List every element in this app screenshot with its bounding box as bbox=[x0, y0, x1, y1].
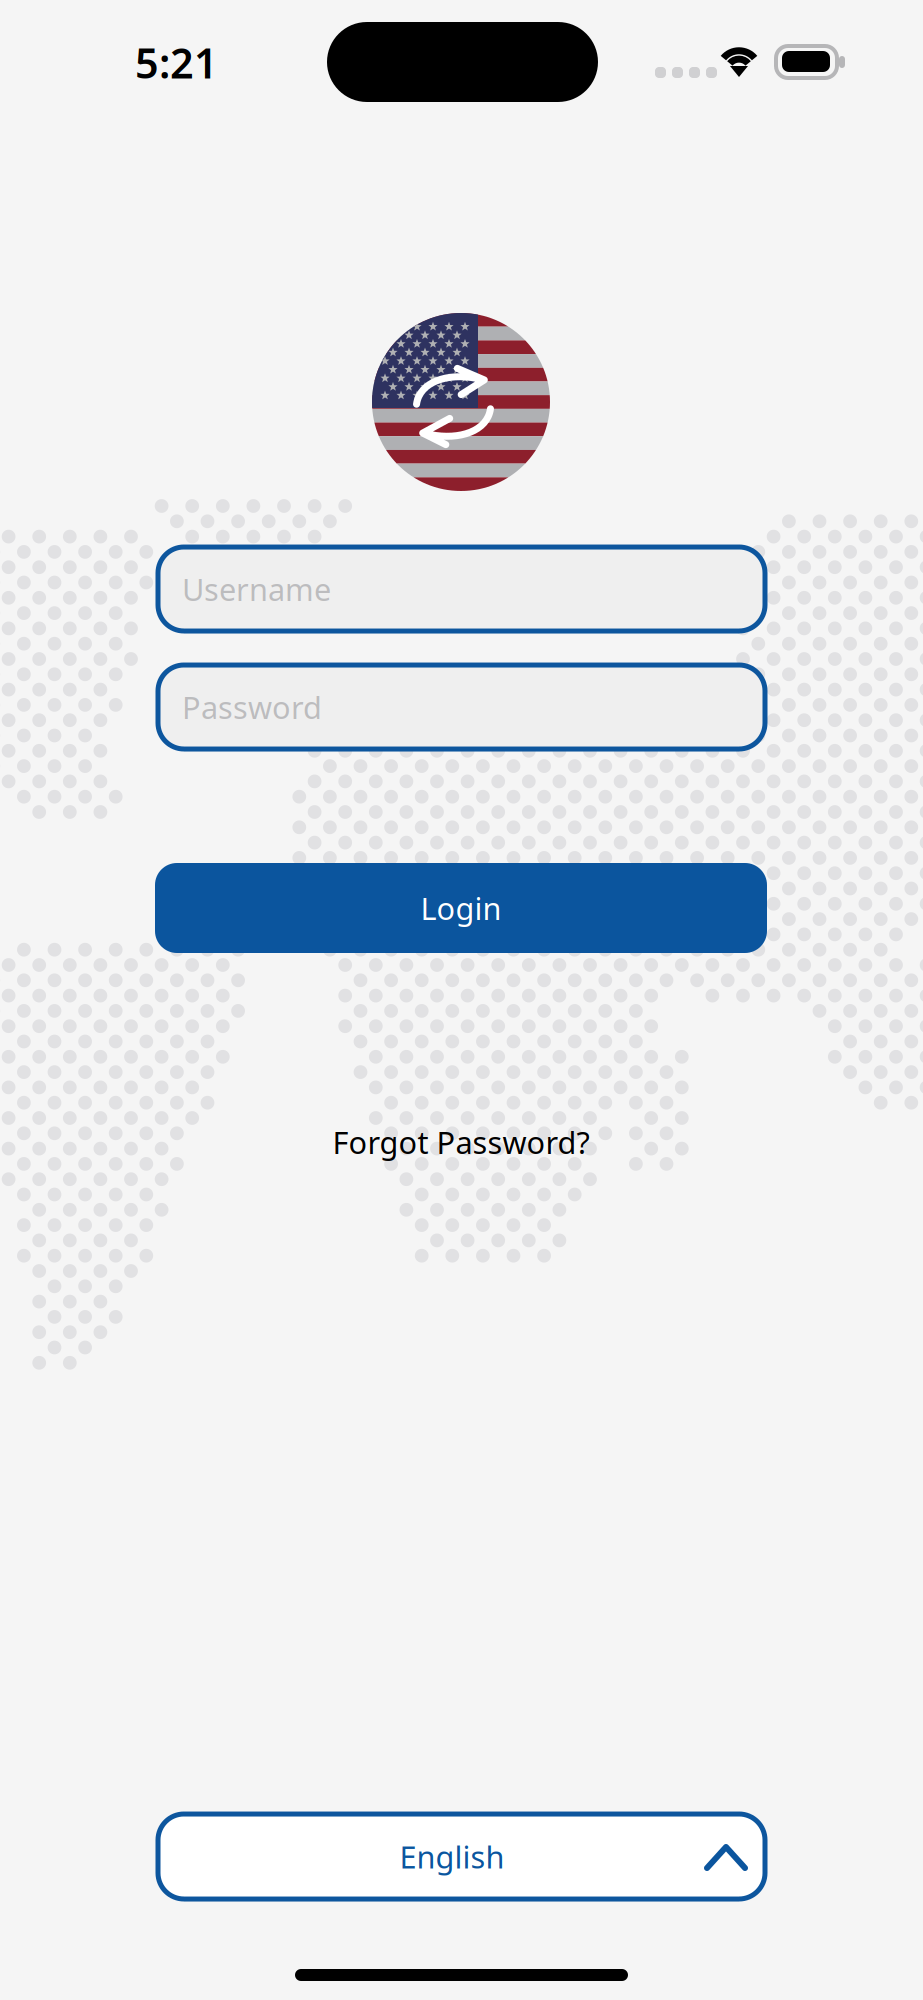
staticText: Username bbox=[182, 569, 331, 609]
staticText: Login bbox=[420, 888, 501, 928]
staticText: Forgot Password? bbox=[332, 1122, 589, 1162]
staticText: 5:21 bbox=[135, 35, 218, 90]
button[interactable]: English bbox=[158, 1814, 765, 1899]
button[interactable]: Login bbox=[155, 863, 767, 953]
staticText: English bbox=[399, 1836, 504, 1877]
button[interactable]: Forgot Password? bbox=[231, 1114, 691, 1170]
staticText: Password bbox=[182, 687, 322, 727]
